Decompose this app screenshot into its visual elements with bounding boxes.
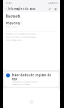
button[interactable]: Enviar dados de registro do app [4,72,59,87]
button[interactable]: Informações do aviso [6,6,36,11]
staticText: Informações do aviso [8,7,36,11]
staticText: Bluetooth [6,15,21,18]
staticText: fixed and mobile devices. [6,39,23,41]
staticText: Ajuda a melhorar o aplicativo enviando [11,81,37,83]
staticText: Frequency [6,21,20,25]
staticText: standard used for exchanging data betwee… [6,36,37,38]
staticText: Enviar dados de registro do app [11,73,51,80]
staticText: 9:41 [6,1,13,5]
button[interactable]: Edit [49,8,51,10]
button[interactable]: Delete [54,8,57,10]
staticText: Wireless standard [6,26,19,28]
staticText: relatórios de uso anônimos. [11,84,30,85]
staticText: Bluetooth is a short-range wireless tech… [6,33,37,35]
